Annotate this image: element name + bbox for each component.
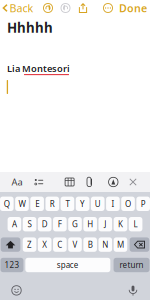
button[interactable]: Back	[1, 0, 35, 16]
button[interactable]: K	[114, 217, 127, 231]
button[interactable]: D	[38, 217, 51, 231]
button[interactable]: Undo	[40, 0, 55, 15]
button[interactable]: W	[15, 197, 29, 211]
button[interactable]: R	[45, 197, 59, 211]
button[interactable]: Attach	[80, 172, 100, 192]
button[interactable]: C	[53, 237, 67, 252]
button[interactable]: Format	[7, 172, 27, 192]
button[interactable]: A	[8, 217, 21, 231]
staticText: Z	[27, 239, 32, 250]
staticText: Y	[80, 198, 85, 209]
button[interactable]: E	[30, 197, 44, 211]
staticText: C	[57, 239, 62, 250]
button[interactable]: Z	[23, 237, 36, 252]
staticText: Hhhhh	[7, 19, 53, 36]
button[interactable]: P	[136, 197, 150, 211]
button[interactable]: Redo	[58, 0, 73, 15]
button[interactable]: O	[121, 197, 135, 211]
staticText: L	[134, 219, 138, 229]
staticText: T	[65, 198, 69, 209]
button[interactable]: Table	[60, 172, 80, 192]
staticText: I	[111, 198, 114, 209]
staticText: R	[50, 198, 55, 209]
staticText: A	[12, 219, 17, 229]
button[interactable]: B	[83, 237, 97, 252]
staticText: Aa	[11, 176, 22, 188]
staticText: P	[141, 198, 146, 209]
staticText: return	[119, 260, 143, 270]
staticText: Q	[4, 198, 10, 209]
button[interactable]: N	[98, 237, 112, 252]
button[interactable]: return	[113, 258, 149, 272]
button[interactable]: Done	[118, 0, 148, 16]
staticText: S	[28, 219, 32, 229]
button[interactable]: Dictate	[124, 281, 142, 299]
button[interactable]: X	[38, 237, 51, 252]
staticText: 123	[4, 260, 19, 270]
button[interactable]: Checklist	[29, 172, 49, 192]
staticText: G	[72, 219, 78, 229]
button[interactable]: H	[83, 217, 97, 231]
staticText: D	[42, 219, 48, 229]
button[interactable]: Delete	[130, 237, 149, 252]
staticText: F	[58, 219, 62, 229]
button[interactable]: Markup	[103, 172, 123, 192]
button[interactable]: Q	[0, 197, 14, 211]
button[interactable]: U	[91, 197, 104, 211]
button[interactable]: Share	[75, 0, 90, 15]
button[interactable]: I	[106, 197, 120, 211]
button[interactable]: L	[129, 217, 142, 231]
staticText: W	[18, 198, 25, 209]
button[interactable]: V	[68, 237, 82, 252]
staticText: U	[95, 198, 101, 209]
button[interactable]: Y	[76, 197, 89, 211]
button[interactable]: Emoji	[7, 281, 25, 299]
staticText: E	[35, 198, 39, 209]
button[interactable]: S	[23, 217, 36, 231]
button[interactable]: 123	[0, 258, 23, 272]
staticText: Done	[119, 1, 147, 15]
staticText: Lia Montesori	[7, 62, 70, 75]
button[interactable]: space	[25, 258, 110, 272]
staticText: H	[87, 219, 93, 229]
staticText: N	[102, 239, 108, 250]
staticText: V	[72, 239, 77, 250]
staticText: O	[125, 198, 131, 209]
staticText: M	[117, 239, 124, 250]
staticText: Back	[10, 1, 34, 15]
staticText: X	[42, 239, 47, 250]
button[interactable]: Shift	[1, 237, 20, 252]
button[interactable]: J	[98, 217, 112, 231]
button[interactable]: F	[53, 217, 67, 231]
button[interactable]: M	[114, 237, 127, 252]
staticText: B	[88, 239, 93, 250]
staticText: K	[118, 219, 123, 229]
staticText: J	[104, 219, 106, 229]
button[interactable]: T	[61, 197, 74, 211]
button[interactable]: G	[68, 217, 82, 231]
button[interactable]: More	[100, 0, 115, 15]
staticText: space	[57, 260, 79, 270]
button[interactable]: Close	[124, 172, 142, 192]
